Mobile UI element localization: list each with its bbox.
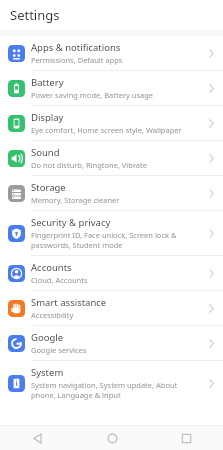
button[interactable]: Display <box>0 106 223 140</box>
staticText: Accessibility <box>31 310 74 320</box>
button[interactable]: Home <box>75 426 149 450</box>
button[interactable]: Google <box>0 326 223 360</box>
button[interactable]: System <box>0 361 223 405</box>
button[interactable]: Back <box>0 426 75 450</box>
staticText: Sound <box>31 146 60 159</box>
staticText: Battery <box>31 76 64 89</box>
staticText: System navigation, System update, About … <box>31 380 201 400</box>
staticText: Eye comfort, Home screen style, Wallpape… <box>31 125 182 135</box>
staticText: Google <box>31 331 64 344</box>
staticText: Memory, Storage cleaner <box>31 195 120 205</box>
staticText: Smart assistance <box>31 296 107 309</box>
staticText: System <box>31 366 64 379</box>
button[interactable]: Apps & notifications <box>0 36 223 70</box>
button[interactable]: Battery <box>0 71 223 105</box>
button[interactable]: Sound <box>0 141 223 175</box>
staticText: Apps & notifications <box>31 41 121 54</box>
staticText: Power saving mode, Battery usage <box>31 90 154 100</box>
button[interactable]: Smart assistance <box>0 291 223 325</box>
button[interactable]: Recents <box>149 426 223 450</box>
staticText: Cloud, Accounts <box>31 275 88 285</box>
staticText: Do not disturb, Ringtone, Vibrate <box>31 160 148 170</box>
button[interactable]: Accounts <box>0 256 223 290</box>
staticText: Display <box>31 111 64 124</box>
staticText: Google services <box>31 345 87 355</box>
staticText: Settings <box>10 6 60 24</box>
button[interactable]: Storage <box>0 176 223 210</box>
button[interactable]: Security & privacy <box>0 211 223 255</box>
staticText: Fingerprint ID, Face unlock, Screen lock… <box>31 230 201 250</box>
staticText: Security & privacy <box>31 216 111 229</box>
staticText: Accounts <box>31 261 72 274</box>
staticText: Permissions, Default apps <box>31 55 123 65</box>
staticText: Storage <box>31 181 66 194</box>
